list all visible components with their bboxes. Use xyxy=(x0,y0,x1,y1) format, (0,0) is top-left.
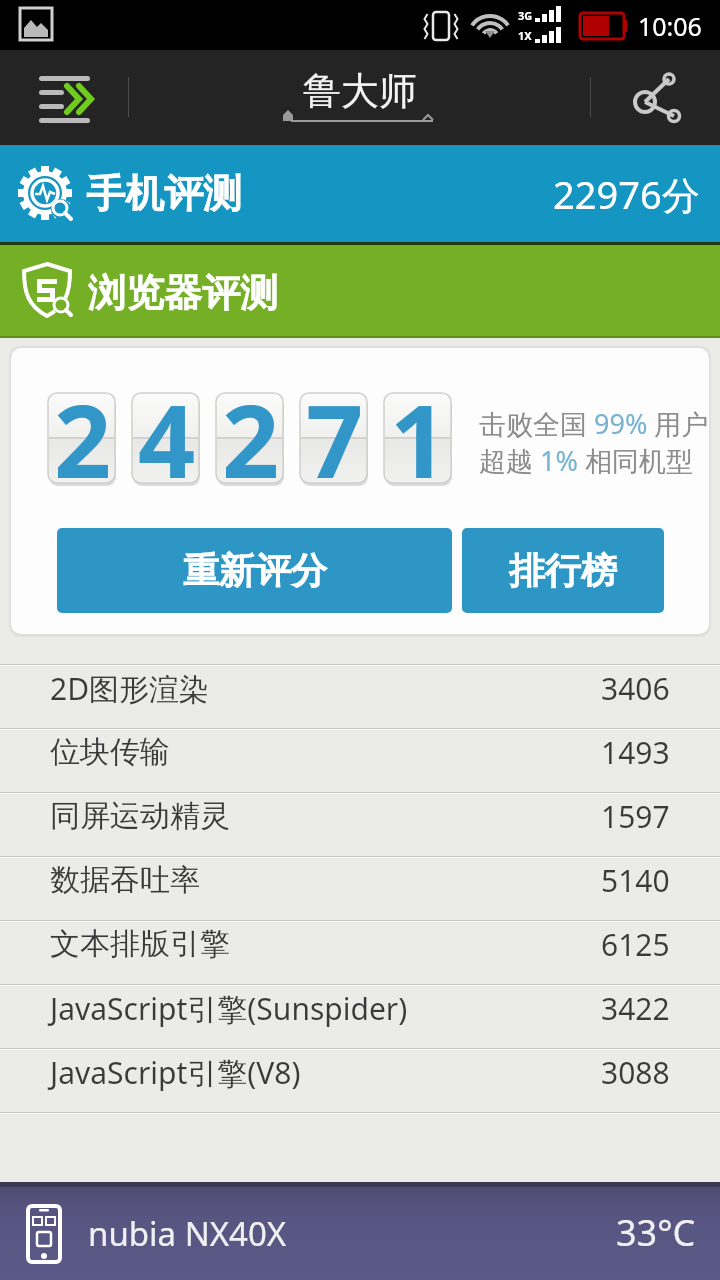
staticText: 击败全国 99% 用户 超越 1% 相同机型 xyxy=(479,405,709,479)
button[interactable]: 2D图形渲染 xyxy=(0,666,720,728)
staticText: 7 xyxy=(306,371,364,507)
staticText: 1X xyxy=(518,28,532,43)
staticText: 重新评分 xyxy=(183,548,327,593)
staticText: 数据吞吐率 xyxy=(50,861,200,899)
staticText: 3G xyxy=(518,8,533,23)
staticText: 33°C xyxy=(616,1208,696,1257)
staticText: JavaScript引擎(V8) xyxy=(50,1052,301,1093)
staticText: 排行榜 xyxy=(509,548,617,593)
staticText: 1597 xyxy=(601,796,670,837)
staticText: nubia NX40X xyxy=(88,1211,287,1256)
button[interactable]: 浏览器评测 xyxy=(0,245,720,336)
button[interactable]: 手机评测 xyxy=(0,145,720,242)
button[interactable]: 重新评分 xyxy=(57,528,452,613)
staticText: 同屏运动精灵 xyxy=(50,797,230,835)
button[interactable]: 同屏运动精灵 xyxy=(0,794,720,856)
staticText: 浏览器评测 xyxy=(88,269,278,317)
staticText: 3422 xyxy=(601,988,670,1029)
staticText: 3406 xyxy=(601,668,670,709)
button[interactable]: 位块传输 xyxy=(0,730,720,792)
staticText: 22976分 xyxy=(553,168,700,220)
button[interactable]: 排行榜 xyxy=(462,528,664,613)
staticText: JavaScript引擎(Sunspider) xyxy=(50,988,408,1029)
staticText: 5140 xyxy=(601,860,670,901)
staticText: 2 xyxy=(54,371,112,507)
staticText: 文本排版引擎 xyxy=(50,925,230,963)
button[interactable]: JavaScript引擎(Sunspider) xyxy=(0,986,720,1048)
button[interactable]: JavaScript引擎(V8) xyxy=(0,1050,720,1112)
staticText: 2D图形渲染 xyxy=(50,668,210,709)
staticText: 2 xyxy=(222,371,280,507)
button[interactable] xyxy=(605,58,700,138)
staticText: 3088 xyxy=(601,1052,670,1093)
button[interactable]: nubia NX40X xyxy=(0,1182,720,1280)
staticText: 1493 xyxy=(601,732,670,773)
button[interactable]: 鲁大师 xyxy=(260,50,460,145)
staticText: 10:06 xyxy=(638,9,702,43)
button[interactable] xyxy=(20,58,115,138)
staticText: 4 xyxy=(138,371,196,507)
button[interactable]: 文本排版引擎 xyxy=(0,922,720,984)
staticText: 位块传输 xyxy=(50,733,170,771)
staticText: 6125 xyxy=(601,924,670,965)
button[interactable]: 数据吞吐率 xyxy=(0,858,720,920)
staticText: 鲁大师 xyxy=(303,67,417,115)
staticText: 1 xyxy=(390,371,448,507)
staticText: 手机评测 xyxy=(86,169,242,218)
